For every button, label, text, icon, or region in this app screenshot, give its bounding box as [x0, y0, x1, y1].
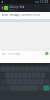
button[interactable]: Send — [45, 52, 49, 55]
button[interactable]: Group chat — [8, 5, 49, 11]
staticText: Group chat — [9, 5, 24, 9]
staticText: Some message content here — [2, 13, 41, 17]
staticText: tap for info — [9, 9, 15, 11]
staticText: 12:00 — [39, 0, 48, 4]
button[interactable]: Type a message — [1, 52, 44, 55]
staticText: 12:00 — [44, 13, 48, 15]
staticText: Type a message — [1, 52, 21, 55]
button[interactable]: Back — [1, 5, 4, 10]
button[interactable]: Contact photo — [4, 6, 8, 10]
